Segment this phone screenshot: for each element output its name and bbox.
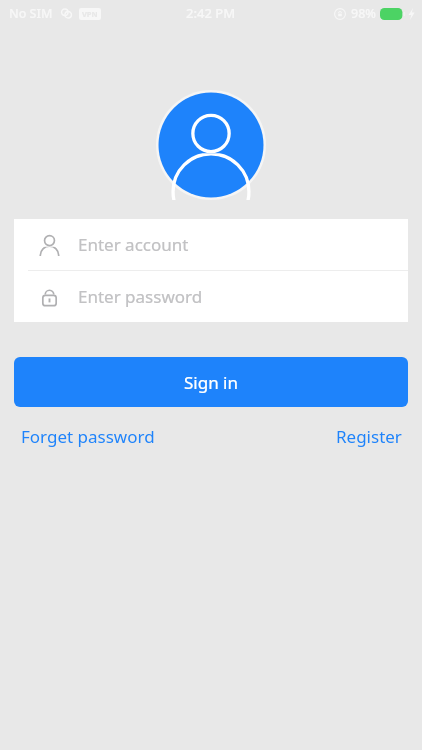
button[interactable]: Register [328,419,422,454]
staticText: Enter account [78,233,189,256]
button[interactable]: Forget password [0,419,163,454]
button[interactable]: Enter password [14,271,408,322]
staticText: VPN [82,9,98,19]
staticText: 98% [351,5,376,22]
staticText: 2:42 PM [186,4,236,22]
staticText: Enter password [78,285,203,308]
button[interactable]: Enter account [14,219,408,270]
staticText: No SIM [9,5,53,22]
staticText: Forget password [21,425,155,448]
button[interactable]: Sign in [14,357,408,407]
staticText: Sign in [184,371,238,394]
staticText: Register [336,425,402,448]
